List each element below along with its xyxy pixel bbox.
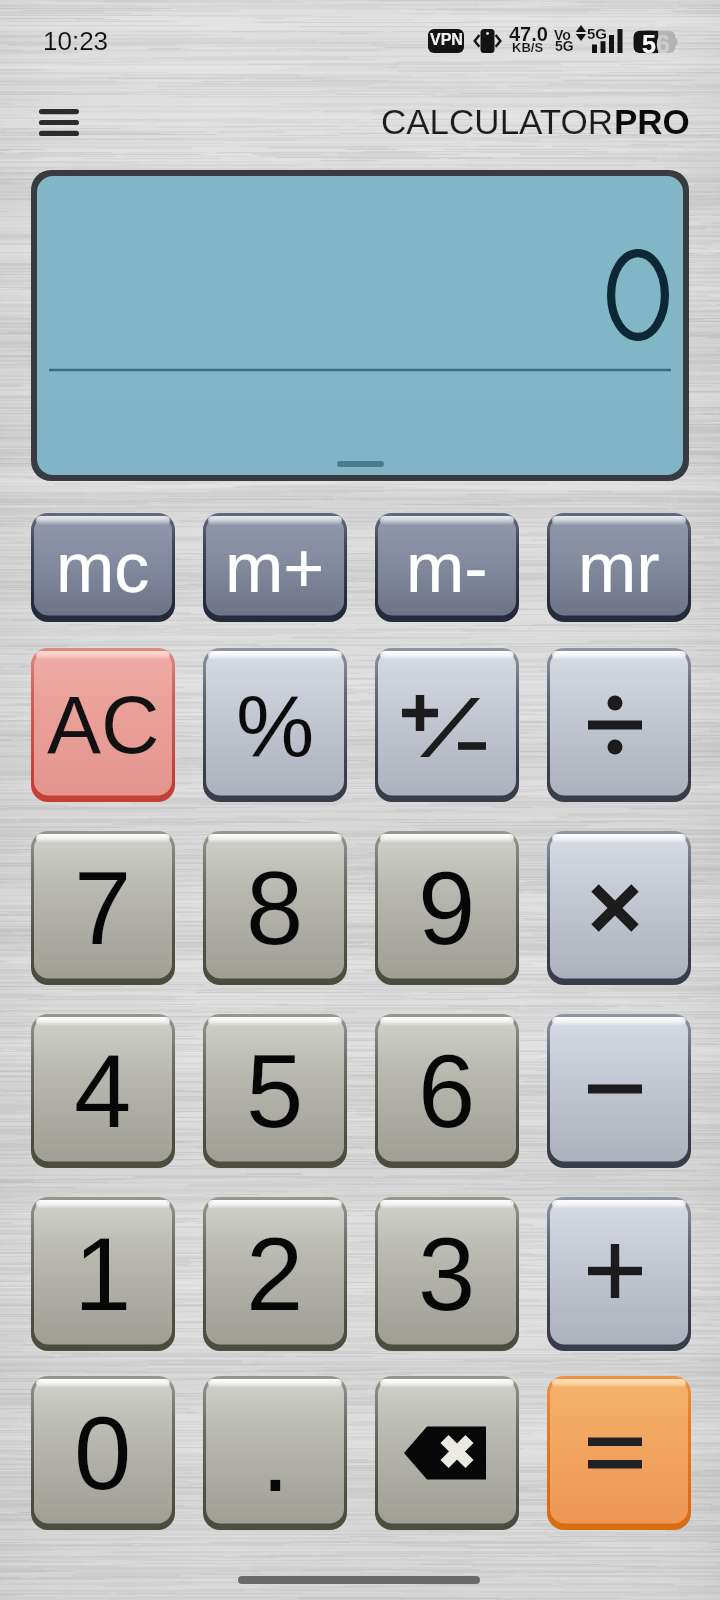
button[interactable]: 4 bbox=[31, 1014, 175, 1168]
button[interactable]: Equals bbox=[547, 1376, 691, 1530]
button[interactable]: mr bbox=[547, 513, 691, 622]
button[interactable]: % bbox=[203, 648, 347, 802]
staticText: 6 bbox=[656, 30, 670, 58]
button[interactable]: AC bbox=[31, 648, 175, 802]
button[interactable]: 0 bbox=[31, 1376, 175, 1530]
staticText: mc bbox=[56, 529, 150, 607]
staticText: m+ bbox=[225, 529, 325, 607]
staticText: 5G bbox=[555, 38, 574, 54]
button[interactable]: 5 bbox=[203, 1014, 347, 1168]
staticText: 3 bbox=[418, 1217, 476, 1332]
staticText: 2 bbox=[246, 1217, 304, 1332]
staticText: Vo bbox=[554, 27, 571, 43]
staticText: 47.0 bbox=[509, 23, 548, 45]
button[interactable]: m+ bbox=[203, 513, 347, 622]
button[interactable]: Minus bbox=[547, 1014, 691, 1168]
button[interactable]: Menu bbox=[32, 98, 86, 146]
staticText: 5 bbox=[642, 30, 656, 58]
button[interactable]: Divide bbox=[547, 648, 691, 802]
staticText: 6 bbox=[418, 1034, 476, 1149]
staticText: 0 bbox=[74, 1396, 132, 1511]
button[interactable]: . bbox=[203, 1376, 347, 1530]
button[interactable]: 8 bbox=[203, 831, 347, 985]
staticText: CALCULATOR bbox=[381, 102, 614, 141]
button[interactable]: 3 bbox=[375, 1197, 519, 1351]
button[interactable]: 1 bbox=[31, 1197, 175, 1351]
button[interactable]: 2 bbox=[203, 1197, 347, 1351]
button[interactable]: 6 bbox=[375, 1014, 519, 1168]
button[interactable]: 7 bbox=[31, 831, 175, 985]
button[interactable]: Plus minus bbox=[375, 648, 519, 802]
staticText: 5G bbox=[587, 25, 608, 42]
staticText: . bbox=[261, 1398, 290, 1513]
staticText: PRO bbox=[614, 102, 690, 141]
staticText: VPN bbox=[430, 31, 463, 49]
staticText: 10:23 bbox=[43, 26, 109, 55]
button[interactable]: Backspace bbox=[375, 1376, 519, 1530]
staticText: 7 bbox=[74, 851, 132, 966]
button[interactable]: mc bbox=[31, 513, 175, 622]
staticText: AC bbox=[47, 680, 160, 770]
button[interactable]: Plus bbox=[547, 1197, 691, 1351]
staticText: m- bbox=[406, 529, 488, 607]
button[interactable]: Multiply bbox=[547, 831, 691, 985]
button[interactable]: m- bbox=[375, 513, 519, 622]
staticText: 9 bbox=[418, 851, 476, 966]
staticText: 4 bbox=[74, 1034, 132, 1149]
staticText: 1 bbox=[74, 1217, 132, 1332]
button[interactable]: 9 bbox=[375, 831, 519, 985]
staticText: KB/S bbox=[512, 40, 544, 55]
staticText: 5 bbox=[246, 1034, 304, 1149]
staticText: mr bbox=[578, 529, 660, 607]
staticText: % bbox=[236, 676, 315, 774]
staticText: 8 bbox=[246, 851, 304, 966]
